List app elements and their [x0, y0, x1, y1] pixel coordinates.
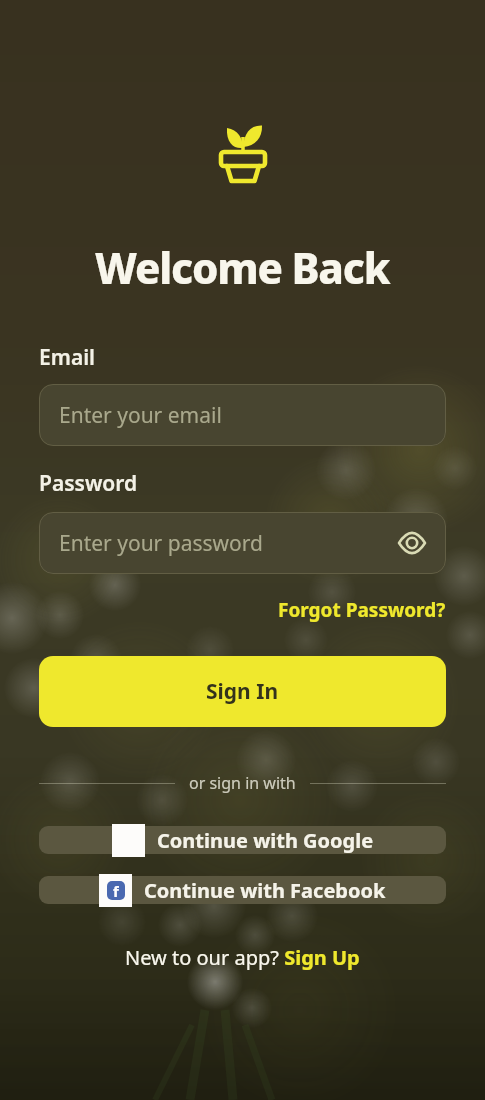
button[interactable]: Forgot Password? [278, 597, 446, 623]
staticText: Password [39, 469, 446, 498]
staticText: f [113, 881, 119, 900]
staticText: Welcome Back [95, 239, 390, 296]
button[interactable]: Enter your email [39, 384, 446, 446]
button[interactable]: New to our app? Sign Up [125, 944, 360, 971]
button[interactable]: Enter your password [39, 512, 446, 574]
staticText: Enter your password [59, 529, 263, 558]
staticText: Enter your email [59, 401, 222, 430]
button[interactable]: f [39, 873, 446, 907]
staticText: Sign In [206, 677, 279, 706]
staticText: Continue with Google [157, 827, 374, 854]
staticText: Email [39, 343, 446, 372]
button[interactable]: Sign In [39, 656, 446, 727]
staticText: New to our app? Sign Up [125, 944, 360, 971]
staticText: or sign in with [189, 772, 296, 794]
button[interactable]: Continue with Google [39, 823, 446, 857]
staticText: Continue with Facebook [144, 877, 386, 904]
